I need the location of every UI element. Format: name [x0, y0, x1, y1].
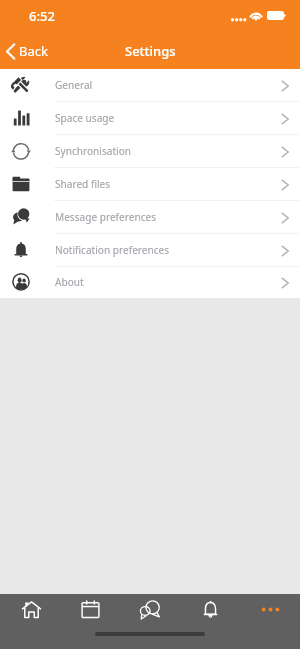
button[interactable]: Back [0, 38, 56, 64]
button[interactable]: About [0, 267, 300, 298]
staticText: Shared files [55, 177, 111, 191]
staticText: About [55, 275, 84, 289]
button[interactable]: Home [14, 594, 48, 625]
button[interactable]: Calendar [73, 594, 107, 625]
button[interactable]: Notifications [193, 594, 227, 625]
staticText: Notification preferences [55, 243, 170, 257]
button[interactable]: Space usage [0, 102, 300, 135]
staticText: Message preferences [55, 210, 157, 224]
button[interactable]: Message preferences [0, 201, 300, 234]
staticText: Back [19, 42, 48, 60]
staticText: Space usage [55, 111, 115, 125]
staticText: Synchronisation [55, 144, 132, 158]
staticText: General [55, 78, 93, 92]
button[interactable]: More [253, 594, 287, 625]
staticText: Settings [125, 42, 176, 60]
button[interactable]: General [0, 69, 300, 102]
button[interactable]: Synchronisation [0, 135, 300, 168]
staticText: 6:52 [29, 7, 55, 25]
button[interactable]: Shared files [0, 168, 300, 201]
button[interactable]: Messages [133, 594, 167, 625]
button[interactable]: Notification preferences [0, 234, 300, 267]
